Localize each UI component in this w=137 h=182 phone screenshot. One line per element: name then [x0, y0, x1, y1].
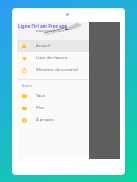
button[interactable]: À propos: [17, 114, 89, 126]
button[interactable]: Liste des favoris: [17, 52, 89, 64]
staticText: Liste des favoris: [36, 55, 68, 61]
button[interactable]: Accueil: [17, 40, 89, 52]
staticText: Autre: [22, 83, 32, 88]
staticText: Minuteur de sommeil: [36, 67, 79, 73]
staticText: Accueil: [36, 43, 50, 49]
staticText: www.exemple.com: [36, 29, 65, 33]
staticText: À propos: [36, 117, 54, 123]
staticText: Taux: [36, 93, 46, 99]
staticText: Ligne l'irl am Free app: [18, 23, 68, 29]
staticText: Plus: [36, 105, 45, 111]
button[interactable]: Plus: [17, 102, 89, 114]
button[interactable]: Minuteur de sommeil: [17, 64, 89, 76]
button[interactable]: Taux: [17, 90, 89, 102]
